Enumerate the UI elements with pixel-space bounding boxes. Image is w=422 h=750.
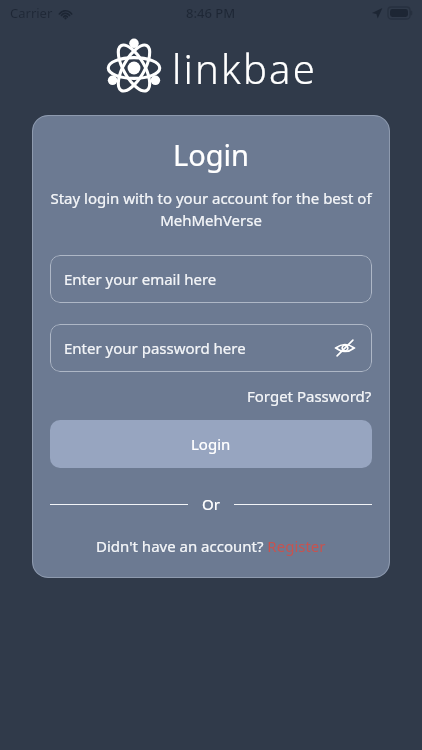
button[interactable]: Login: [50, 420, 372, 468]
staticText: Forget Password?: [247, 386, 372, 406]
button[interactable]: Show password: [332, 335, 358, 361]
staticText: linkbae: [172, 41, 317, 95]
button[interactable]: Forget Password?: [247, 386, 372, 406]
button[interactable]: Enter your password here: [50, 324, 372, 372]
button[interactable]: Enter your email here: [50, 255, 372, 303]
staticText: 8:46 PM: [186, 4, 236, 22]
staticText: Enter your email here: [64, 269, 217, 289]
staticText: Or: [202, 494, 220, 514]
staticText: Carrier: [10, 4, 53, 22]
button[interactable]: Didn't have an account? Register: [96, 536, 326, 556]
staticText: Login: [50, 135, 372, 174]
staticText: Didn't have an account? Register: [96, 536, 326, 556]
staticText: Enter your password here: [64, 338, 246, 358]
staticText: Stay login with to your account for the …: [50, 188, 372, 231]
staticText: Login: [191, 434, 231, 454]
